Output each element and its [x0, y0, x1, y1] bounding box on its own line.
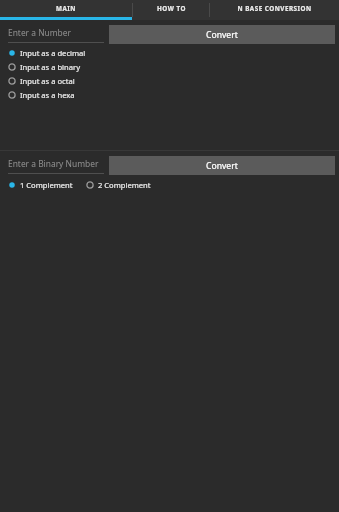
staticText: Enter a Binary Number — [8, 158, 99, 169]
button[interactable]: N BASE CONVERSION — [210, 0, 339, 20]
staticText: MAIN — [56, 4, 76, 13]
staticText: Input as a decimal — [20, 48, 86, 58]
staticText: N BASE CONVERSION — [237, 4, 312, 13]
button[interactable]: 2 Complement — [83, 178, 153, 192]
button[interactable]: Enter a Binary Number — [0, 158, 106, 174]
staticText: Convert — [206, 160, 238, 172]
staticText: Input as a binary — [20, 62, 81, 72]
staticText: HOW TO — [157, 4, 186, 13]
button[interactable]: 1 Complement — [5, 178, 75, 192]
button[interactable]: Enter a Number — [0, 27, 106, 43]
staticText: Enter a Number — [8, 27, 71, 38]
button[interactable]: Input as a hexa — [5, 88, 77, 102]
button[interactable]: Input as a octal — [5, 74, 77, 88]
staticText: 1 Complement — [20, 180, 73, 190]
button[interactable]: Convert — [109, 25, 335, 44]
button[interactable]: Input as a binary — [5, 60, 83, 74]
staticText: Input as a octal — [20, 76, 75, 86]
staticText: Input as a hexa — [20, 90, 75, 100]
button[interactable]: HOW TO — [133, 0, 209, 20]
staticText: 2 Complement — [98, 180, 151, 190]
button[interactable]: Input as a decimal — [5, 46, 88, 60]
button[interactable]: MAIN — [0, 0, 132, 20]
staticText: Convert — [206, 29, 238, 41]
button[interactable]: Convert — [109, 156, 335, 175]
